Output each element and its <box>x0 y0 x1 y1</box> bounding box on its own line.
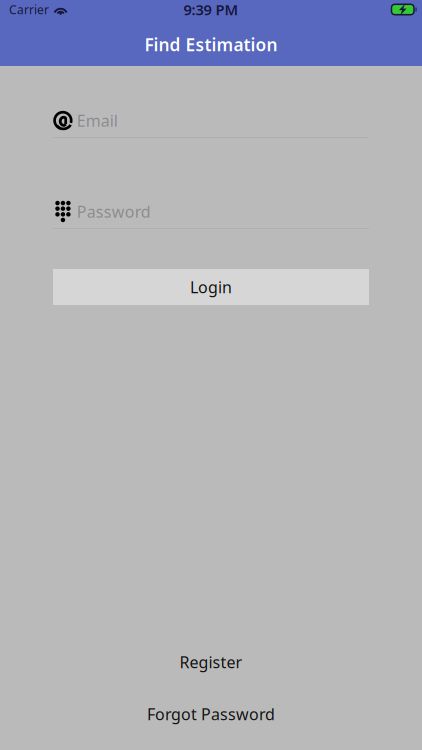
staticText: Email <box>77 110 118 131</box>
staticText: Password <box>77 201 151 222</box>
staticText: Carrier <box>9 1 49 17</box>
button[interactable]: Login <box>53 269 369 305</box>
staticText: Find Estimation <box>144 33 277 56</box>
button[interactable]: Register <box>53 643 369 681</box>
staticText: Login <box>190 276 232 298</box>
button[interactable]: Forgot Password <box>53 695 369 733</box>
staticText: 9:39 PM <box>183 0 238 19</box>
button[interactable]: Password <box>53 195 369 229</box>
button[interactable]: Email <box>53 104 369 138</box>
staticText: Forgot Password <box>147 703 275 725</box>
staticText: Register <box>179 651 242 673</box>
